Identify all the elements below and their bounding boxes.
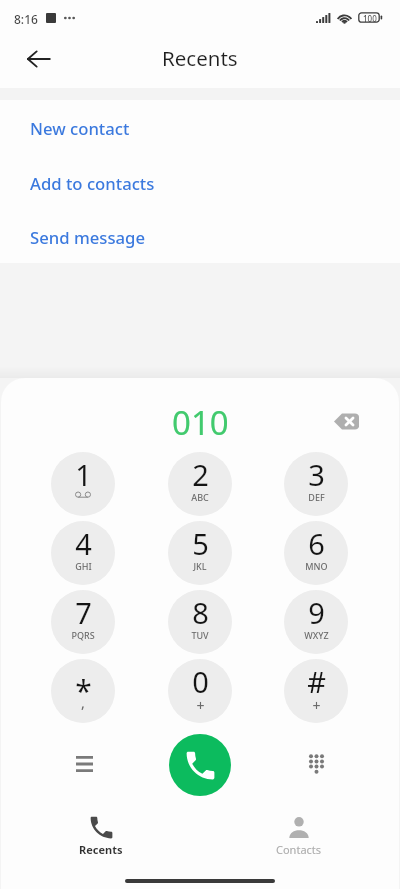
- button[interactable]: New contact: [0, 100, 400, 156]
- staticText: *: [75, 670, 92, 711]
- staticText: 8:16: [14, 11, 38, 27]
- button[interactable]: Dialpad: [292, 740, 340, 788]
- staticText: ABC: [191, 491, 209, 503]
- staticText: New contact: [30, 117, 130, 140]
- button[interactable]: #: [284, 659, 348, 723]
- button[interactable]: Backspace: [325, 400, 367, 442]
- button[interactable]: 1: [51, 452, 115, 516]
- button[interactable]: 4: [51, 521, 115, 585]
- button[interactable]: 6: [284, 521, 348, 585]
- button[interactable]: Call history: [60, 740, 108, 788]
- button[interactable]: *: [51, 659, 115, 723]
- staticText: +: [312, 696, 321, 715]
- staticText: DEF: [308, 491, 325, 503]
- button[interactable]: Contacts: [249, 802, 349, 860]
- staticText: 2: [192, 455, 209, 494]
- staticText: 9: [308, 593, 325, 632]
- staticText: 8: [192, 593, 209, 632]
- staticText: Add to contacts: [30, 172, 155, 195]
- button[interactable]: Add to contacts: [0, 156, 400, 211]
- button[interactable]: 0: [168, 659, 232, 723]
- staticText: Recents: [162, 44, 238, 72]
- staticText: TUV: [191, 629, 209, 641]
- staticText: 6: [308, 524, 325, 563]
- button[interactable]: 7: [51, 590, 115, 654]
- staticText: MNO: [305, 560, 328, 572]
- button[interactable]: 2: [168, 452, 232, 516]
- staticText: +: [196, 696, 205, 715]
- staticText: GHI: [75, 560, 92, 572]
- button[interactable]: 8: [168, 590, 232, 654]
- button[interactable]: Back: [14, 35, 62, 83]
- staticText: 010: [172, 400, 229, 445]
- staticText: Send message: [30, 226, 145, 249]
- button[interactable]: Send message: [0, 211, 400, 263]
- staticText: ,: [81, 693, 85, 712]
- staticText: PQRS: [71, 629, 95, 641]
- staticText: 3: [308, 455, 325, 494]
- staticText: Recents: [79, 842, 123, 857]
- button[interactable]: 3: [284, 452, 348, 516]
- staticText: #: [307, 662, 326, 701]
- staticText: 5: [192, 524, 209, 563]
- staticText: 1: [75, 455, 92, 494]
- button[interactable]: 5: [168, 521, 232, 585]
- button[interactable]: Recents: [51, 802, 151, 860]
- staticText: 4: [75, 524, 92, 563]
- staticText: 100: [363, 13, 377, 24]
- button[interactable]: 9: [284, 590, 348, 654]
- staticText: Contacts: [276, 842, 322, 857]
- staticText: 7: [75, 593, 92, 632]
- staticText: JKL: [193, 560, 207, 572]
- staticText: WXYZ: [304, 629, 329, 641]
- staticText: 0: [192, 662, 209, 701]
- button[interactable]: Call: [169, 734, 231, 796]
